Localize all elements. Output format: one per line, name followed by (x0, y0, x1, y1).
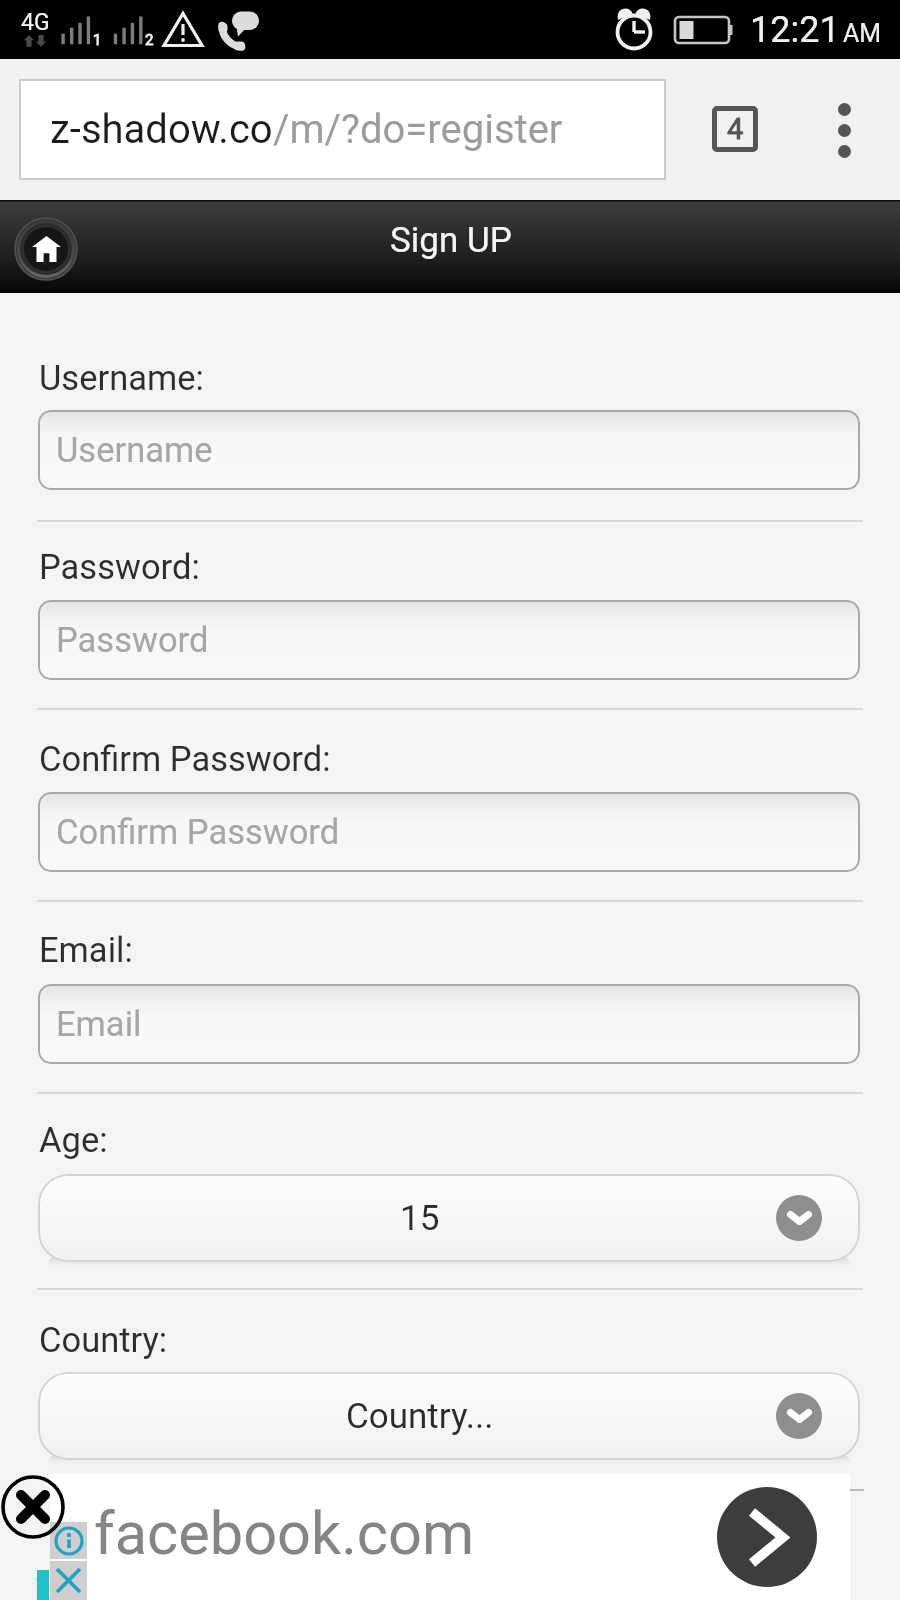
staticText: /m/?do=register (273, 106, 563, 153)
staticText: 12:21 (750, 9, 840, 51)
button[interactable]: Expand (776, 1195, 822, 1241)
staticText: Country... (346, 1396, 494, 1437)
staticText: Confirm Password: (39, 739, 331, 779)
button[interactable]: Country... (38, 1372, 860, 1460)
staticText: 4 (727, 112, 744, 146)
staticText: Sign UP (390, 220, 512, 261)
button[interactable]: Expand (776, 1393, 822, 1439)
button[interactable]: Username (38, 410, 860, 490)
staticText: Username (56, 430, 213, 470)
button[interactable]: z-shadow.co (19, 79, 666, 180)
button[interactable]: Open advertisement (717, 1487, 817, 1587)
staticText: Username: (39, 358, 204, 398)
button[interactable]: More options (808, 89, 880, 171)
button[interactable]: Confirm Password (38, 792, 860, 872)
staticText: Password (56, 620, 209, 660)
staticText: 2 (145, 31, 154, 49)
button[interactable]: 15 (38, 1174, 860, 1262)
button[interactable]: Home (14, 217, 78, 281)
staticText: AM (843, 19, 882, 48)
button[interactable]: Email (38, 984, 860, 1064)
staticText: 1 (93, 31, 102, 49)
button[interactable]: Ad information (50, 1522, 87, 1559)
staticText: Country: (39, 1320, 168, 1360)
button[interactable]: Password (38, 600, 860, 680)
staticText: Email: (39, 930, 133, 970)
button[interactable]: Dismiss ad (50, 1561, 87, 1600)
button[interactable]: Tabs (700, 96, 770, 162)
staticText: Email (56, 1004, 142, 1044)
staticText: z-shadow.co (50, 106, 273, 153)
staticText: Confirm Password (56, 812, 340, 852)
button[interactable]: Close advertisement (1, 1475, 65, 1539)
button[interactable]: Advertisement (50, 1474, 850, 1600)
staticText: 4G (21, 9, 50, 36)
staticText: 15 (400, 1198, 440, 1239)
staticText: Age: (39, 1120, 108, 1160)
staticText: Password: (39, 547, 200, 587)
staticText: facebook.com (94, 1499, 475, 1569)
